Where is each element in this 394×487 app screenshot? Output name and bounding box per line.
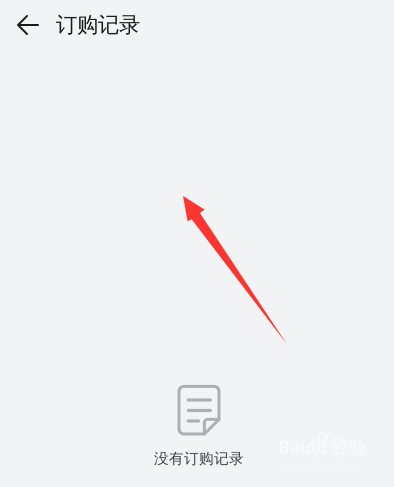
button[interactable]: Back — [0, 0, 56, 50]
staticText: 订购记录 — [56, 12, 140, 38]
staticText: 没有订购记录 — [154, 449, 244, 467]
